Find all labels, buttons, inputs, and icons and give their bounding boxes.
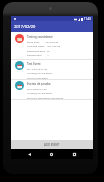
staticText: 11:43: [84, 17, 91, 21]
button[interactable]: Back: [24, 149, 34, 159]
staticText: Counting down: 2017/02/28: [27, 44, 61, 47]
button[interactable]: Test Event: [11, 60, 93, 80]
button[interactable]: Recent apps: [69, 149, 79, 159]
staticText: This is a test event: [27, 76, 48, 79]
staticText: Remaining days: 70: [27, 49, 50, 52]
staticText: ADD EVENT: [44, 143, 60, 147]
button[interactable]: Home: [46, 149, 56, 159]
staticText: Event date: 2017/02/28: [27, 40, 59, 43]
staticText: Evento de prueba: [27, 82, 51, 86]
button[interactable]: ADD EVENT: [11, 140, 93, 149]
staticText: 28 17/02/28 01:00: [27, 67, 48, 70]
staticText: 10 day(s) for the event: [27, 91, 52, 94]
staticText: Elapsed days: 7: [27, 53, 49, 56]
button[interactable]: Testing countdown: [11, 32, 93, 60]
staticText: Test Event: [27, 62, 41, 66]
staticText: 10 day(s) for the event: [27, 71, 52, 74]
staticText: Esta es la descripcion del evento: [27, 96, 64, 99]
staticText: Testing countdown: [27, 35, 53, 39]
button[interactable]: Evento de prueba: [11, 80, 93, 100]
staticText: 2017/02/20 01:00: [27, 87, 47, 90]
staticText: 2017/02/20: [14, 24, 36, 29]
